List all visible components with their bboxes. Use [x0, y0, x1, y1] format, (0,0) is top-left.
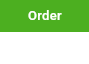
staticText: Order	[28, 8, 62, 23]
button[interactable]: Order	[0, 0, 89, 32]
